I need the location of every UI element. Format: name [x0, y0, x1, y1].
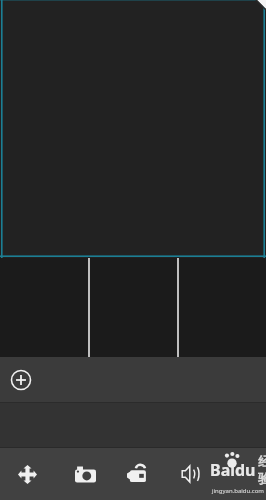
button[interactable]: Camera preview [0, 0, 266, 258]
staticText: 经验 [258, 453, 266, 487]
staticText: jingyan.baidu.com [212, 487, 264, 495]
button[interactable]: Move [10, 457, 44, 491]
button[interactable]: Audio [174, 457, 208, 491]
button[interactable]: Add [7, 366, 35, 394]
staticText: Baidu [210, 459, 256, 481]
button[interactable]: Record video [120, 457, 154, 491]
button[interactable]: Take photo [68, 457, 102, 491]
